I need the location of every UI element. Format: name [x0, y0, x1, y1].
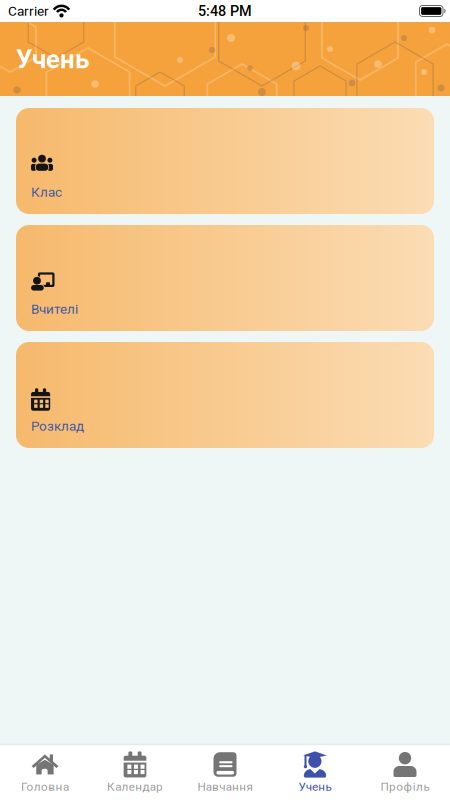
button[interactable]: Календар — [90, 752, 180, 794]
button[interactable]: Профіль — [360, 752, 450, 794]
staticText: Календар — [107, 780, 163, 794]
staticText: Carrier — [8, 3, 49, 19]
button[interactable]: Клас — [16, 108, 434, 214]
button[interactable]: Вчителі — [16, 225, 434, 331]
staticText: Розклад — [31, 418, 84, 434]
button[interactable]: Розклад — [16, 342, 434, 448]
button[interactable]: Учень — [270, 752, 360, 794]
staticText: Учень — [16, 44, 89, 75]
button[interactable]: Навчання — [180, 752, 270, 794]
button[interactable]: Головна — [0, 752, 90, 794]
staticText: Профіль — [381, 780, 429, 794]
staticText: Навчання — [197, 780, 253, 794]
staticText: Головна — [21, 780, 69, 794]
staticText: Учень — [298, 780, 332, 794]
staticText: Клас — [31, 184, 62, 200]
staticText: 5:48 PM — [198, 3, 252, 19]
staticText: Вчителі — [31, 301, 78, 317]
